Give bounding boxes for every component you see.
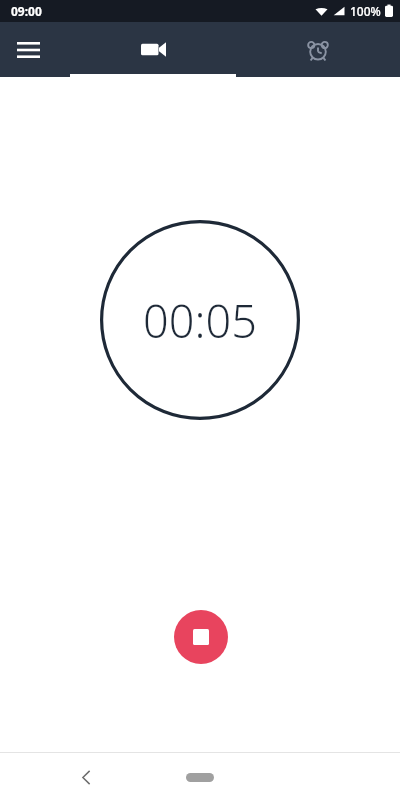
button[interactable]: Home (173, 759, 227, 795)
button[interactable]: Stop recording (174, 610, 228, 664)
button[interactable]: Open navigation menu (6, 28, 50, 72)
button[interactable]: Alarm tab (236, 22, 400, 77)
button[interactable]: Back (66, 757, 106, 797)
staticText: 09:00 (11, 3, 42, 19)
button[interactable]: Video recorder tab (70, 22, 236, 77)
staticText: 100% (350, 3, 381, 19)
staticText: 00:05 (143, 290, 257, 351)
